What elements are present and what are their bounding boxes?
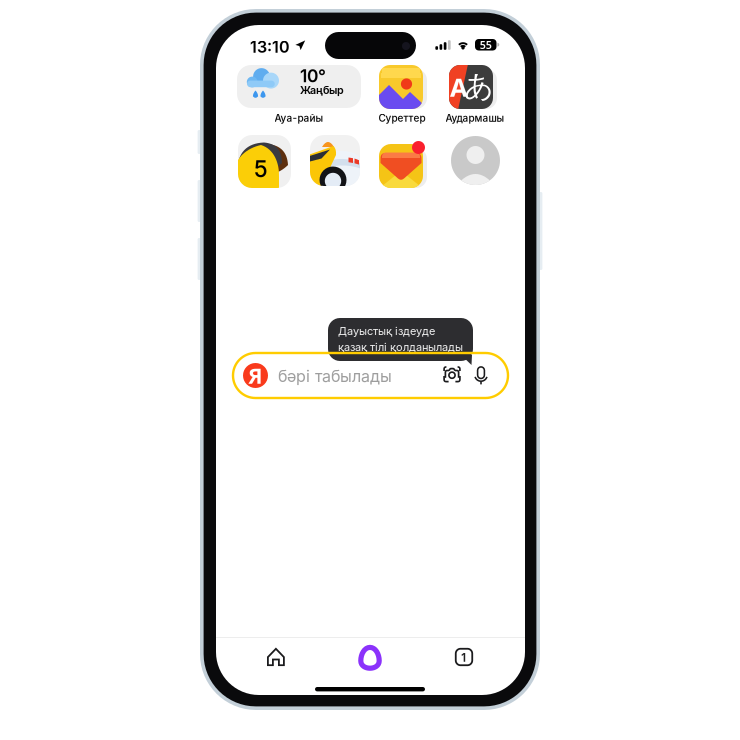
- staticText: 10°: [300, 65, 326, 86]
- button[interactable]: Account: [451, 136, 500, 185]
- staticText: Я: [248, 361, 263, 390]
- staticText: 13:10: [250, 37, 290, 57]
- staticText: あ: [464, 68, 494, 104]
- button[interactable]: Translator: [449, 65, 501, 113]
- button[interactable]: Taxi: [310, 135, 360, 186]
- staticText: Дауыстық іздеуде: [338, 324, 435, 338]
- button[interactable]: Tabs: [434, 639, 494, 675]
- staticText: қазақ тілі қолданылады: [338, 340, 463, 354]
- button[interactable]: Navigator: [238, 135, 291, 188]
- staticText: Ауа-райы: [274, 112, 323, 124]
- button[interactable]: 10°: [237, 65, 361, 108]
- button[interactable]: Home: [246, 638, 306, 676]
- staticText: Аудармашы: [445, 112, 504, 124]
- staticText: 55: [480, 38, 492, 52]
- staticText: Суреттер: [378, 112, 425, 124]
- staticText: 1: [460, 649, 467, 665]
- staticText: Жаңбыр: [300, 83, 344, 96]
- button[interactable]: Я: [233, 353, 508, 398]
- staticText: 5: [254, 155, 268, 183]
- staticText: бәрі табылады: [278, 366, 392, 386]
- button[interactable]: Mail: [379, 144, 431, 192]
- button[interactable]: Alice: [340, 631, 400, 683]
- staticText: A: [450, 70, 468, 104]
- button[interactable]: Photos: [379, 65, 431, 113]
